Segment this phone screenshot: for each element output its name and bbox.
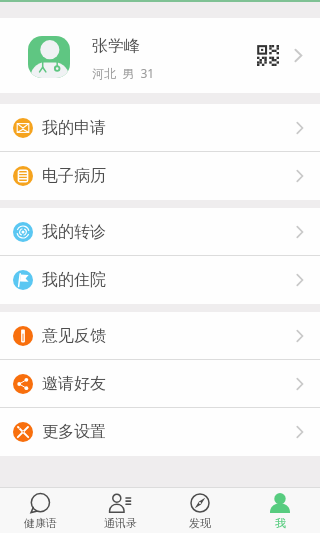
staticText: 我	[275, 516, 286, 530]
staticText: 我的申请	[42, 118, 106, 138]
button[interactable]: 电子病历	[0, 152, 320, 200]
button[interactable]: 更多设置	[0, 408, 320, 456]
staticText: 河北 男 31	[92, 65, 155, 81]
button[interactable]: 健康语	[0, 488, 80, 533]
button[interactable]: 张学峰	[0, 18, 320, 93]
button[interactable]: 邀请好友	[0, 360, 320, 408]
button[interactable]: 我的申请	[0, 104, 320, 152]
button[interactable]: 我	[240, 488, 320, 533]
button[interactable]: 通讯录	[80, 488, 160, 533]
staticText: 我的转诊	[42, 222, 106, 242]
staticText: 张学峰	[92, 36, 140, 56]
staticText: 健康语	[24, 516, 57, 530]
staticText: 我的住院	[42, 270, 106, 290]
staticText: 通讯录	[104, 516, 137, 530]
other: Scan QR code	[257, 45, 279, 66]
staticText: 电子病历	[42, 166, 106, 186]
staticText: 意见反馈	[42, 326, 106, 346]
button[interactable]: 我的转诊	[0, 208, 320, 256]
button[interactable]: 发现	[160, 488, 240, 533]
button[interactable]: 我的住院	[0, 256, 320, 304]
staticText: 发现	[189, 516, 211, 530]
button[interactable]: 意见反馈	[0, 312, 320, 360]
staticText: 更多设置	[42, 422, 106, 442]
staticText: 邀请好友	[42, 374, 106, 394]
